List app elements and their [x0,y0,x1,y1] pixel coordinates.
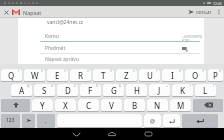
button[interactable]: U [139,69,160,81]
button[interactable]: K [172,84,193,96]
staticText: Y [40,100,45,111]
button[interactable]: vancl@24net.cz [47,19,84,26]
staticText: Z [124,70,129,81]
staticText: 7 [156,69,158,73]
staticText: Napsat zprávu [45,56,79,63]
staticText: R [78,70,84,81]
button[interactable]: P [208,69,223,81]
staticText: 8 [179,69,181,73]
staticText: C [86,100,92,111]
button[interactable]: , [37,114,55,127]
button[interactable]: O [185,69,206,81]
button[interactable]: E [47,69,68,81]
button[interactable]: Backspace [193,99,223,111]
button[interactable]: G [103,84,124,96]
button[interactable]: @ [144,114,161,127]
staticText: V [109,100,114,111]
staticText: A [19,85,25,96]
staticText: 2 [41,69,43,73]
staticText: I [171,70,174,81]
staticText: U [147,70,153,81]
button[interactable]: Z [116,69,137,81]
button[interactable]: X [55,99,76,111]
button[interactable]: Předmět [45,45,66,52]
staticText: ( [190,84,191,88]
staticText: M [177,100,185,111]
button[interactable]: Q [1,69,22,81]
staticText: X [63,100,68,111]
button[interactable]: Y [32,99,53,111]
staticText: P [213,70,218,81]
staticText: 123 [6,117,15,124]
staticText: # [51,84,53,88]
staticText: % [96,84,99,88]
staticText: O [192,70,199,81]
staticText: + KOPIE/SKRYTÁ KOPIE [182,35,204,43]
button[interactable]: Napsat zprávu [45,56,79,63]
button[interactable]: Switch input method [22,114,35,127]
staticText: @ [27,84,30,88]
staticText: 12:46 [213,1,222,6]
staticText: ) [213,84,214,88]
button[interactable]: W [24,69,45,81]
button[interactable]: 123 [1,114,20,127]
staticText: L [203,85,208,96]
button[interactable]: D [57,84,78,96]
staticText: 3 [64,69,66,73]
button[interactable]: R [70,69,91,81]
button[interactable]: B [124,99,145,111]
button[interactable]: Shift [1,99,30,111]
staticText: ODESLAT [196,10,212,15]
staticText: B [132,100,138,111]
button[interactable]: Hide keyboard [61,128,91,140]
button[interactable]: M [170,99,191,111]
staticText: J [158,85,161,96]
staticText: F [88,85,93,96]
staticText: + [166,84,168,88]
staticText: & [119,84,122,88]
button[interactable]: Komu [45,33,59,40]
button[interactable]: N [147,99,168,111]
button[interactable]: F [80,84,101,96]
staticText: Napsat [23,9,42,16]
button[interactable]: I [162,69,183,81]
button[interactable]: S [34,84,55,96]
button[interactable]: ODESLAT [185,6,215,18]
staticText: , [45,117,47,124]
button[interactable]: New line [163,114,180,127]
button[interactable]: Close [2,8,11,17]
button[interactable]: J [149,84,170,96]
button[interactable]: Home [97,128,127,140]
staticText: Předmět [45,45,66,52]
staticText: 6 [133,69,135,73]
staticText: D [65,85,71,96]
staticText: 5 [110,69,112,73]
staticText: Q [8,70,15,81]
staticText: W [31,70,39,81]
staticText: 9 [202,69,204,73]
button[interactable]: Enter [182,114,218,127]
button[interactable]: Recent apps [133,128,163,140]
button[interactable]: L [195,84,216,96]
button[interactable]: T [93,69,114,81]
button[interactable]: V [101,99,122,111]
staticText: N [154,100,161,111]
staticText: E [55,70,60,81]
staticText: H [134,85,140,96]
button[interactable]: A [11,84,32,96]
button[interactable]: More options [215,6,222,18]
staticText: S [42,85,47,96]
button[interactable]: + KOPIE/SKRYTÁ KOPIE [182,35,204,43]
staticText: vancl@24net.cz [47,19,84,26]
staticText: K [180,85,186,96]
button[interactable]: C [78,99,99,111]
staticText: Komu [45,33,59,40]
staticText: G [111,85,117,96]
staticText: - [144,84,145,88]
staticText: @ [150,117,155,124]
staticText: $ [74,84,76,88]
button[interactable]: H [126,84,147,96]
staticText: 1 [18,69,20,73]
staticText: 4 [87,69,89,73]
